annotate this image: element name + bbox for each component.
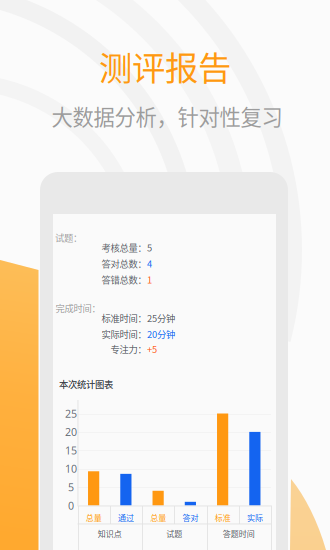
staticText: 答错总数： — [101, 273, 146, 286]
staticText: +5 — [147, 342, 157, 356]
staticText: 答题时间 — [223, 528, 255, 539]
staticText: 5 — [68, 480, 74, 494]
staticText: 完成时间： — [55, 301, 100, 315]
staticText: 总量 — [150, 512, 166, 523]
staticText: 大数据分析，针对性复习 — [51, 101, 282, 131]
staticText: 10 — [65, 461, 77, 476]
staticText: 标准时间： — [101, 311, 146, 325]
staticText: 1 — [147, 273, 152, 286]
staticText: 20 — [65, 425, 77, 439]
staticText: 总量 — [86, 512, 102, 523]
staticText: 专注力： — [110, 342, 146, 356]
staticText: 试题 — [166, 528, 182, 539]
staticText: 25分钟 — [147, 311, 175, 325]
staticText: 实际时间： — [101, 327, 146, 341]
staticText: 知识点 — [98, 528, 122, 539]
staticText: 标准 — [215, 512, 231, 523]
staticText: 25 — [65, 406, 77, 421]
staticText: 本次统计图表 — [59, 377, 113, 391]
staticText: 15 — [65, 443, 77, 457]
staticText: 0 — [68, 498, 74, 513]
staticText: 通过 — [118, 512, 134, 523]
staticText: 答对总数： — [101, 257, 146, 270]
staticText: 考核总量： — [101, 241, 146, 254]
staticText: 20分钟 — [147, 327, 175, 341]
staticText: 答对 — [182, 512, 198, 523]
staticText: 5 — [147, 241, 152, 254]
staticText: 4 — [147, 257, 152, 270]
staticText: 实际 — [247, 512, 263, 523]
staticText: 测评报告 — [99, 42, 231, 90]
staticText: 试题： — [55, 231, 82, 244]
